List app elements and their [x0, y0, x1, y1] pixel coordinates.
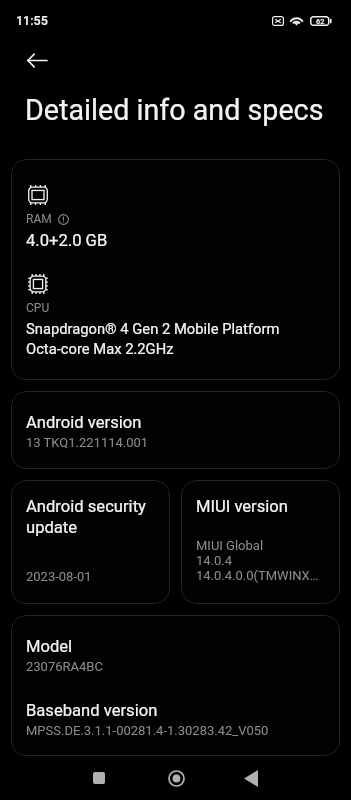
button[interactable]: Android version [11, 391, 340, 469]
staticText: RAM [26, 212, 52, 226]
staticText: 13 TKQ1.221114.001 [26, 435, 149, 450]
staticText: Android security update [26, 497, 158, 537]
staticText: Android version [26, 413, 142, 432]
staticText: 11:55 [16, 13, 48, 28]
button[interactable]: Model [11, 615, 340, 756]
button[interactable]: MIUI version [181, 480, 340, 604]
button[interactable]: Back [15, 38, 59, 82]
staticText: 23076RA4BC [26, 659, 103, 674]
button[interactable]: Recent apps [74, 756, 124, 800]
staticText: Model [26, 637, 73, 656]
staticText: MIUI Global 14.0.4 14.0.4.0.0(TMWINXM) [196, 538, 320, 583]
staticText: Baseband version [26, 701, 158, 720]
staticText: CPU [26, 301, 50, 315]
button[interactable]: Home [151, 756, 201, 800]
button[interactable]: RAM [11, 159, 340, 380]
staticText: 2023-08-01 [26, 569, 92, 584]
staticText: 62 [316, 17, 325, 26]
staticText: MIUI version [196, 497, 288, 516]
button[interactable]: Android security update [11, 480, 170, 604]
staticText: Detailed info and specs [25, 93, 324, 127]
staticText: 4.0+2.0 GB [26, 231, 108, 250]
staticText: MPSS.DE.3.1.1-00281.4-1.30283.42_V050 [26, 723, 269, 738]
button[interactable]: Back [226, 756, 276, 800]
staticText: Snapdragon® 4 Gen 2 Mobile Platform Octa… [26, 320, 280, 357]
